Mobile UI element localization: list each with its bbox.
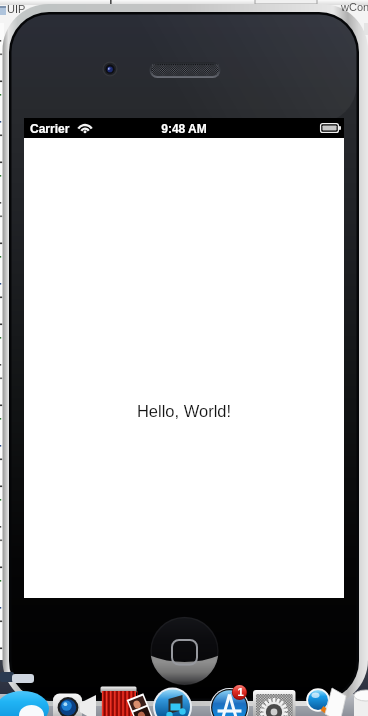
staticText: Hello, World! (24, 402, 344, 424)
staticText: UIP (7, 3, 26, 15)
staticText: Carrier (30, 122, 70, 135)
staticText: 9:48 AM (161, 122, 207, 135)
staticText: 1 (237, 686, 244, 698)
staticText: wCon (341, 1, 368, 13)
